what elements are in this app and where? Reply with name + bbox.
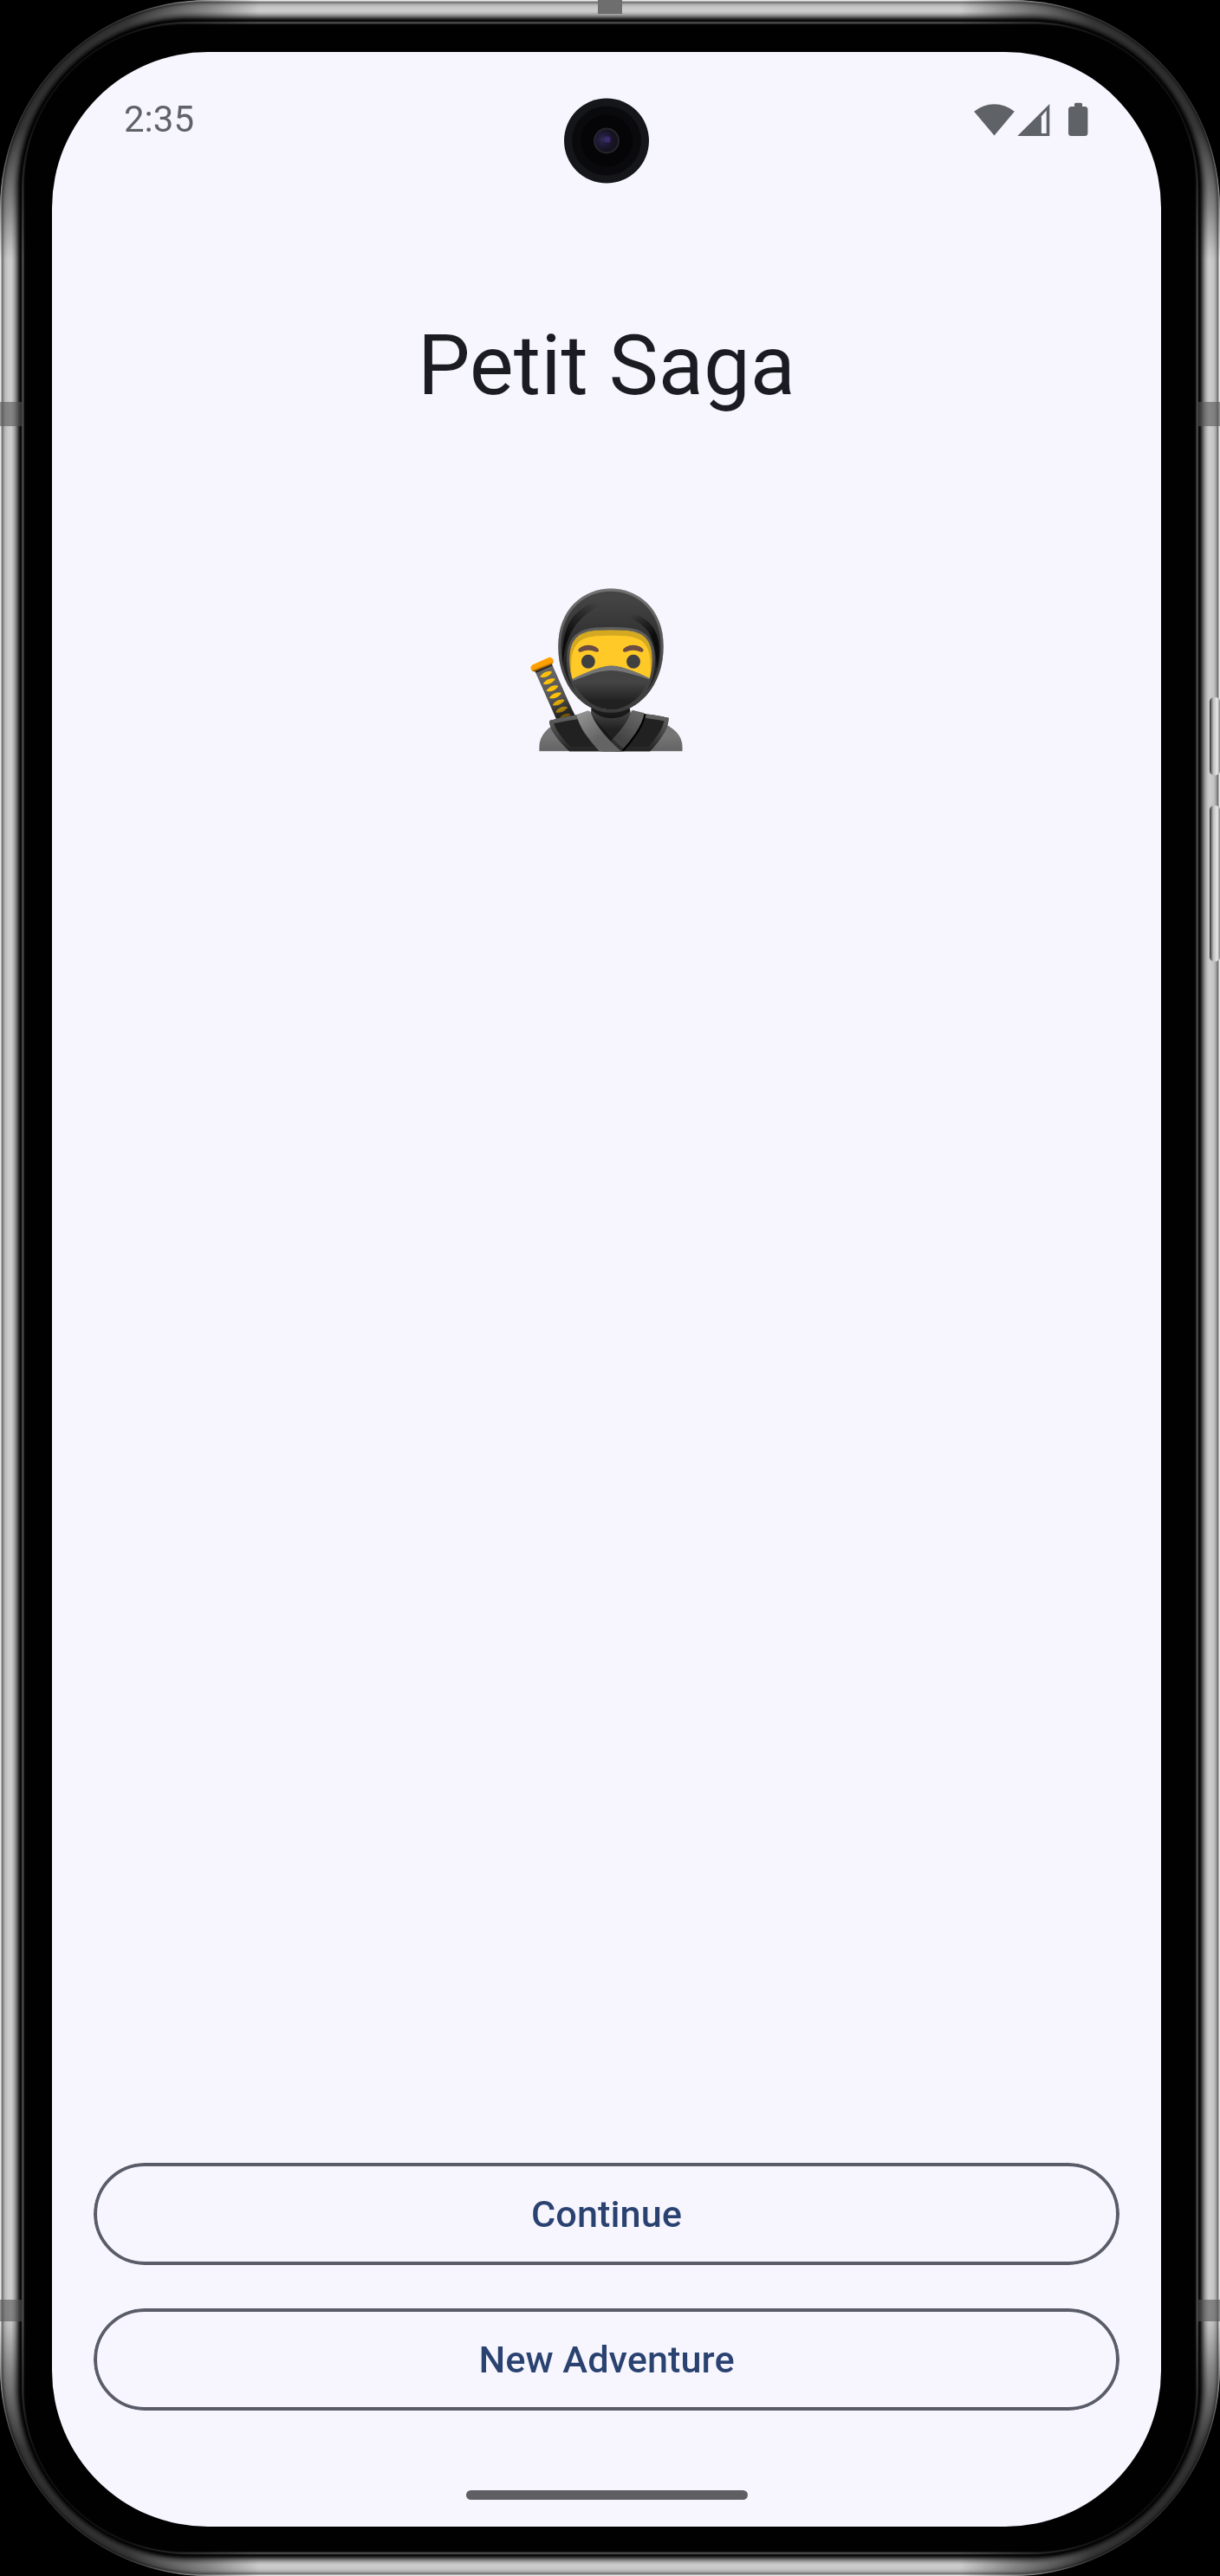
other: Wi-Fi, mobile signal and battery status (52, 52, 1161, 225)
staticText: 2:35 (124, 98, 194, 140)
staticText: 🥷 (52, 583, 1161, 756)
staticText: New Adventure (478, 2338, 735, 2382)
staticText: Continue (531, 2192, 682, 2236)
button[interactable]: Continue (94, 2163, 1119, 2265)
button[interactable]: New Adventure (94, 2308, 1119, 2411)
staticText: Petit Saga (52, 317, 1161, 415)
